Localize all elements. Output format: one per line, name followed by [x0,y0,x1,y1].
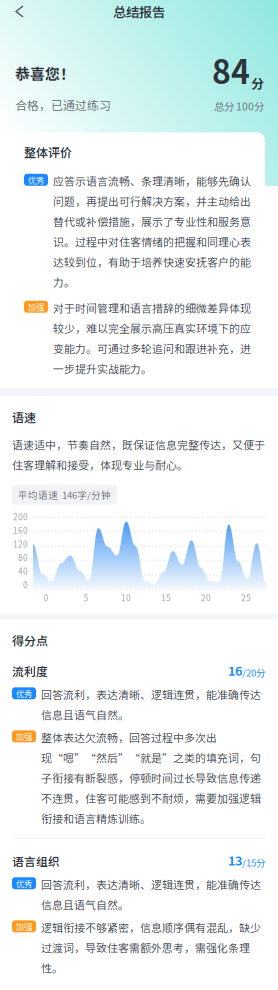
staticText: 整体评价 [24,143,72,161]
staticText: 语速适中，节奏自然，既保证信息完整传达，又便于住客理解和接受，体现专业与耐心。 [12,437,265,473]
staticText: 加强 [28,301,44,313]
staticText: 优秀 [28,174,44,186]
staticText: 平均语速 146字/分钟 [18,488,111,502]
staticText: 分 [251,74,264,92]
staticText: 15 [161,592,171,604]
staticText: 加强 [16,730,32,742]
staticText: 总分 100分 [214,98,264,113]
staticText: 13 [228,851,242,869]
staticText: 80 [18,551,28,563]
staticText: 合格，已通过练习 [15,96,111,113]
staticText: 20 [201,592,211,604]
staticText: 10 [121,592,131,604]
staticText: 16 [228,661,242,679]
staticText: 优秀 [16,877,32,889]
staticText: 总结报告 [113,2,165,21]
staticText: 恭喜您！ [15,62,75,84]
staticText: 对于时间管理和语言措辞的细微差异体现较少，难以完全展示高压真实环境下的应变能力。… [53,300,251,376]
staticText: 回答流利，表达清晰、逻辑连贯，能准确传达信息且语气自然。 [41,686,261,722]
staticText: 整体表达欠流畅，回答过程中多次出现“嗯”“然后”“就是”之类的填充词，句子衔接有… [41,729,261,826]
staticText: 回答流利，表达清晰、逻辑连贯，能准确传达信息且语气自然。 [41,876,261,912]
staticText: 逻辑衔接不够紧密，信息顺序偶有混乱，缺少过渡词，导致住客需额外思考，需强化条理性… [41,919,261,976]
staticText: 加强 [16,920,32,932]
staticText: 5 [83,592,88,604]
staticText: 得分点 [12,632,48,649]
staticText: /15分 [242,855,266,869]
staticText: 40 [18,565,28,577]
staticText: 优秀 [16,687,32,699]
staticText: 120 [13,538,28,550]
staticText: 84 [212,47,250,93]
staticText: 语言组织 [12,852,60,869]
staticText: /20分 [242,665,266,679]
button[interactable]: 返回 [0,0,35,23]
staticText: 应答示语言流畅、条理清晰，能够先确认问题，再提出可行解决方案，并主动给出替代或补… [53,173,251,290]
staticText: 160 [13,524,28,536]
staticText: 流利度 [12,662,48,679]
staticText: 语速 [12,408,36,426]
staticText: 200 [13,511,28,523]
staticText: 0 [43,592,48,604]
staticText: 0 [23,579,28,591]
staticText: 25 [241,592,251,604]
